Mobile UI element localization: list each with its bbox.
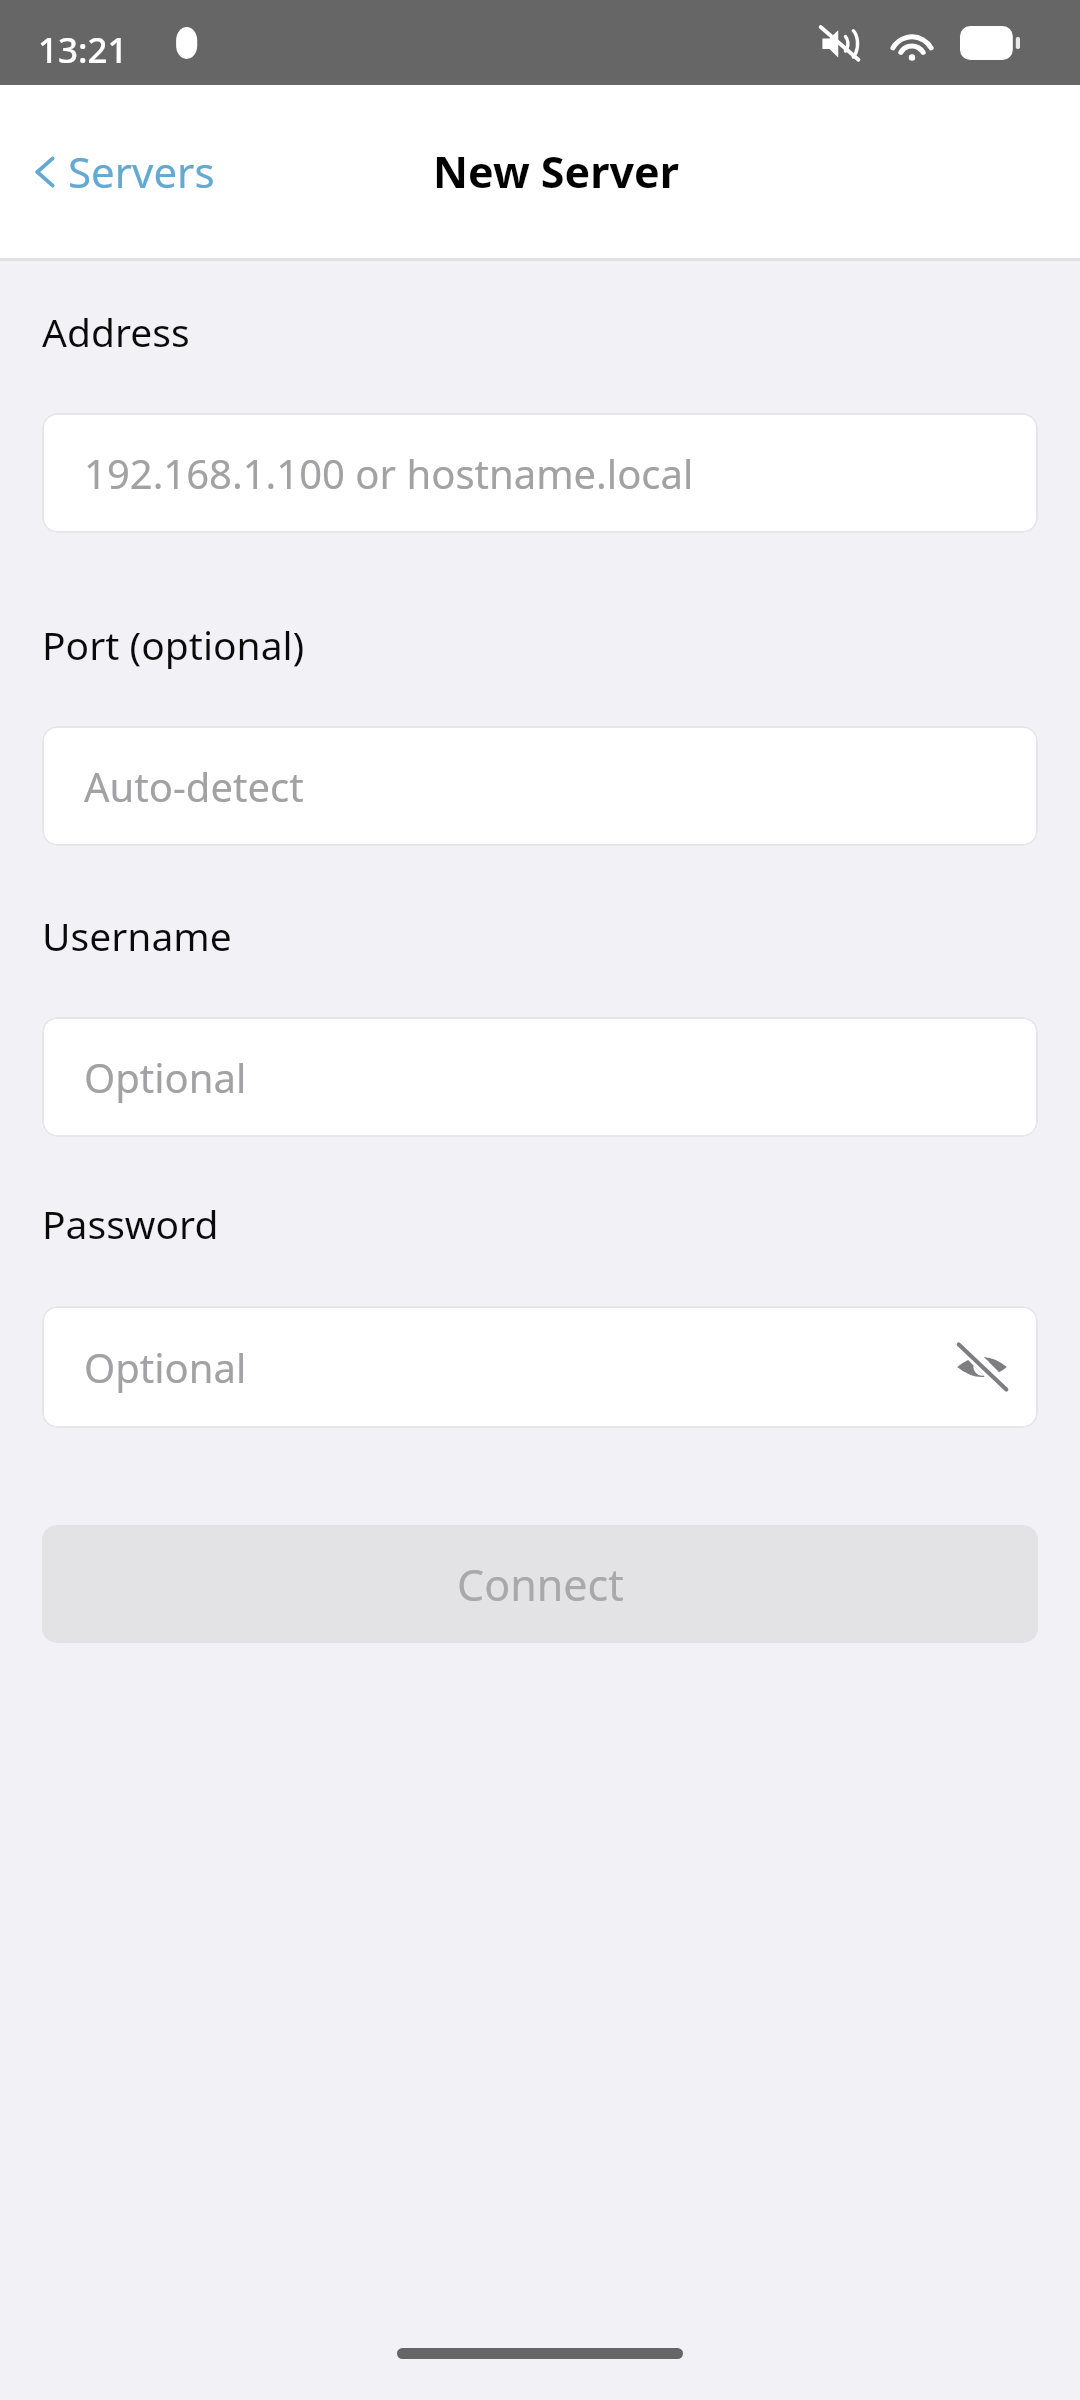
- staticText: New Server: [433, 142, 679, 201]
- staticText: Port (optional): [42, 618, 305, 671]
- staticText: Connect: [457, 1555, 624, 1614]
- staticText: Servers: [68, 143, 215, 200]
- staticText: Auto-detect: [84, 759, 304, 813]
- button[interactable]: Connect: [42, 1525, 1038, 1643]
- button[interactable]: Auto-detect: [42, 726, 1038, 846]
- staticText: Optional: [84, 1050, 247, 1104]
- staticText: 13:21: [38, 26, 128, 74]
- staticText: Optional: [84, 1340, 247, 1394]
- staticText: 192.168.1.100 or hostname.local: [84, 446, 694, 500]
- button[interactable]: 192.168.1.100 or hostname.local: [42, 413, 1038, 533]
- button[interactable]: Servers: [0, 129, 235, 214]
- staticText: Address: [42, 305, 190, 358]
- staticText: Password: [42, 1197, 219, 1250]
- button[interactable]: Show password: [944, 1329, 1020, 1405]
- button[interactable]: Optional: [42, 1306, 1038, 1428]
- staticText: Username: [42, 909, 232, 962]
- button[interactable]: Optional: [42, 1017, 1038, 1137]
